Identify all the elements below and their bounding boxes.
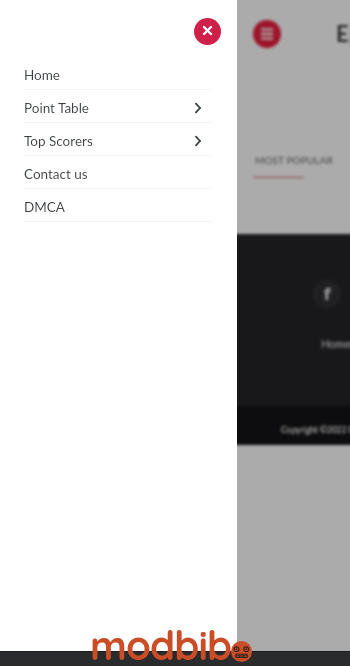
staticText: Home	[24, 67, 60, 83]
staticText: Epl	[336, 20, 350, 46]
staticText: Contact us	[24, 166, 88, 182]
button[interactable]: Home	[0, 57, 237, 90]
staticText: DMCA	[24, 199, 65, 215]
staticText: f	[324, 283, 331, 305]
staticText: MOST POPULAR	[255, 154, 333, 166]
button[interactable]: Close navigation drawer	[194, 18, 221, 45]
button[interactable]: Contact us	[0, 156, 237, 189]
staticText: modbib	[90, 620, 232, 666]
button[interactable]: Top Scorers	[0, 123, 237, 156]
button[interactable]: Facebook	[313, 280, 341, 308]
staticText: Copyright ©2022 Epl Table	[281, 425, 350, 435]
button[interactable]: DMCA	[0, 189, 237, 222]
button[interactable]: Menu	[253, 20, 281, 48]
staticText: Home	[321, 337, 350, 350]
staticText: Point Table	[24, 100, 89, 116]
staticText: Top Scorers	[24, 133, 93, 149]
button[interactable]: Point Table	[0, 90, 237, 123]
